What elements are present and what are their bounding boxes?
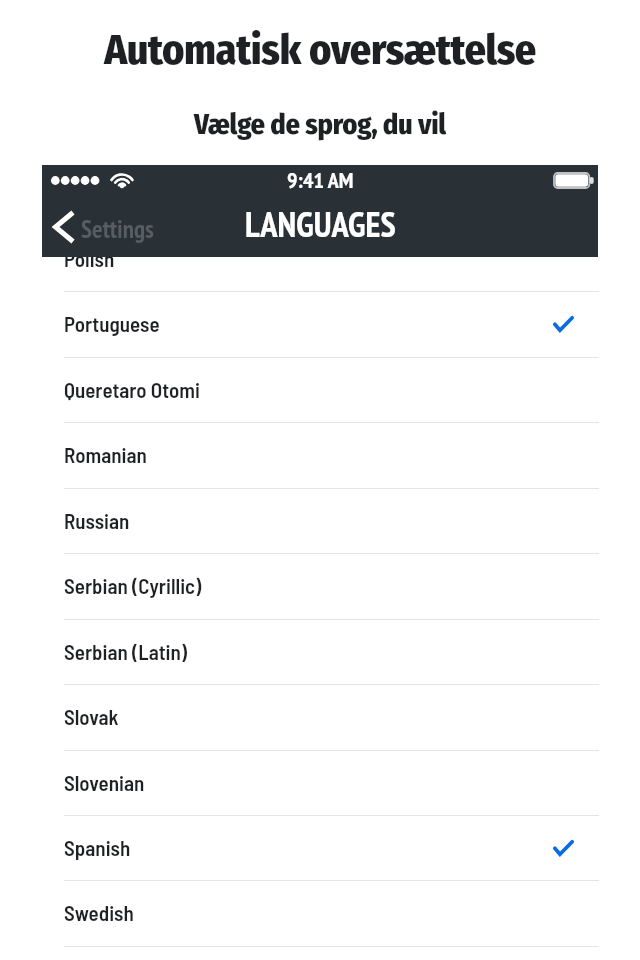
button[interactable]: Polish — [0, 226, 640, 291]
other: Selected — [553, 316, 574, 332]
button[interactable]: Swedish — [0, 880, 640, 945]
staticText: Spanish — [64, 835, 131, 860]
staticText: LANGUAGES — [245, 202, 396, 247]
button[interactable]: Spanish — [0, 815, 640, 880]
staticText: Slovenian — [64, 770, 145, 795]
staticText: Swedish — [64, 900, 134, 925]
staticText: Slovak — [64, 704, 119, 729]
staticText: Automatisk oversættelse — [0, 25, 640, 75]
staticText: Russian — [64, 508, 130, 533]
button[interactable]: Settings — [46, 203, 164, 251]
button[interactable]: Serbian (Latin) — [0, 619, 640, 684]
staticText: 9:41 AM — [287, 166, 354, 194]
button[interactable]: Queretaro Otomi — [0, 357, 640, 422]
other: Wi-Fi — [111, 172, 133, 189]
button[interactable]: Slovak — [0, 684, 640, 749]
staticText: Settings — [81, 213, 154, 245]
button[interactable]: Portuguese — [0, 291, 640, 356]
staticText: Queretaro Otomi — [64, 377, 200, 402]
staticText: Romanian — [64, 442, 147, 467]
staticText: Vælge de sprog, du vil — [0, 107, 640, 141]
button[interactable]: Serbian (Cyrillic) — [0, 553, 640, 618]
staticText: Serbian (Latin) — [64, 639, 188, 664]
button[interactable]: Slovenian — [0, 750, 640, 815]
other: Cellular signal — [50, 174, 102, 187]
staticText: Portuguese — [64, 311, 160, 336]
staticText: Serbian (Cyrillic) — [64, 573, 202, 598]
other: Selected — [553, 840, 574, 856]
button[interactable]: Romanian — [0, 422, 640, 487]
other: Battery full — [554, 173, 598, 189]
staticText: Polish — [64, 246, 115, 271]
button[interactable]: Russian — [0, 488, 640, 553]
